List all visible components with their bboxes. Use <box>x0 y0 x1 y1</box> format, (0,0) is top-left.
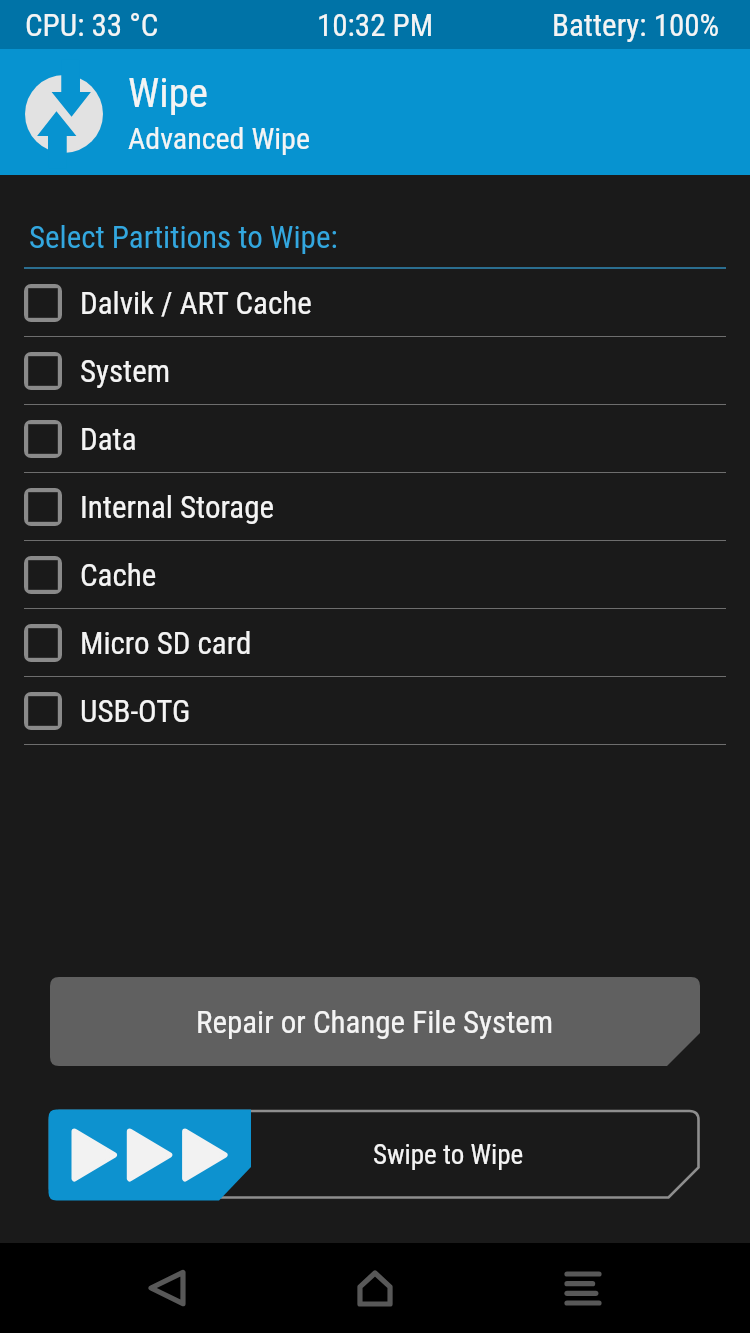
staticText: System <box>80 353 171 389</box>
button[interactable]: System <box>0 337 750 404</box>
staticText: CPU: 33 °C <box>25 7 159 43</box>
button[interactable]: Home <box>312 1243 438 1333</box>
staticText: 10:32 PM <box>317 7 434 43</box>
staticText: Swipe to Wipe <box>373 1139 524 1171</box>
button[interactable]: USB-OTG <box>0 677 750 744</box>
staticText: Battery: 100% <box>552 7 720 43</box>
button[interactable]: Dalvik / ART Cache <box>0 269 750 336</box>
button[interactable]: Internal Storage <box>0 473 750 540</box>
staticText: USB-OTG <box>80 693 191 729</box>
button[interactable]: Cache <box>0 541 750 608</box>
button[interactable]: Micro SD card <box>0 609 750 676</box>
button[interactable]: Swipe to Wipe <box>50 1111 700 1199</box>
staticText: Select Partitions to Wipe: <box>29 219 338 255</box>
staticText: Data <box>80 421 137 457</box>
staticText: Repair or Change File System <box>196 1004 554 1040</box>
staticText: Cache <box>80 557 157 593</box>
button[interactable]: Menu <box>520 1243 646 1333</box>
staticText: Wipe <box>128 69 209 117</box>
button[interactable]: Back <box>104 1243 230 1333</box>
staticText: Advanced Wipe <box>128 121 310 156</box>
staticText: Micro SD card <box>80 625 252 661</box>
staticText: Internal Storage <box>80 489 275 525</box>
button[interactable]: Repair or Change File System <box>50 977 700 1066</box>
button[interactable]: Data <box>0 405 750 472</box>
staticText: Dalvik / ART Cache <box>80 285 312 321</box>
